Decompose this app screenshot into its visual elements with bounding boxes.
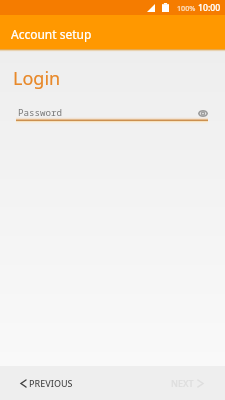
- button[interactable]: PREVIOUS: [0, 369, 85, 397]
- button[interactable]: NEXT: [159, 369, 225, 397]
- button[interactable]: Show password: [195, 105, 211, 121]
- staticText: Login: [13, 66, 61, 91]
- button[interactable]: Password: [16, 104, 208, 127]
- staticText: Account setup: [11, 26, 92, 42]
- staticText: Password: [18, 106, 63, 119]
- staticText: PREVIOUS: [29, 377, 73, 389]
- staticText: NEXT: [171, 377, 194, 389]
- staticText: 10:00: [198, 2, 221, 14]
- staticText: 100%: [177, 3, 196, 13]
